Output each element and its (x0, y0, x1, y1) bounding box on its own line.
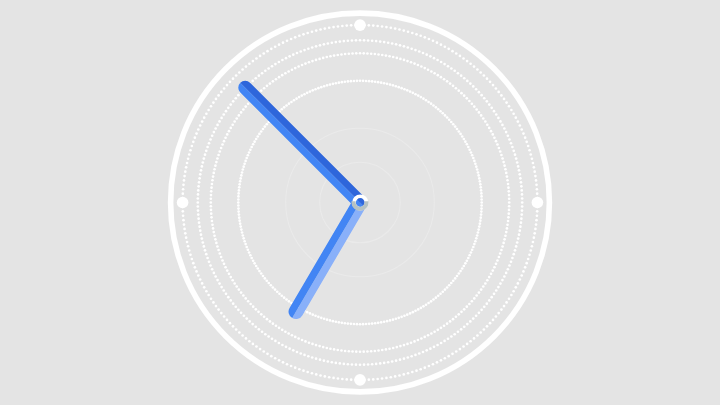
button[interactable]: Analog clock face (0, 0, 720, 405)
